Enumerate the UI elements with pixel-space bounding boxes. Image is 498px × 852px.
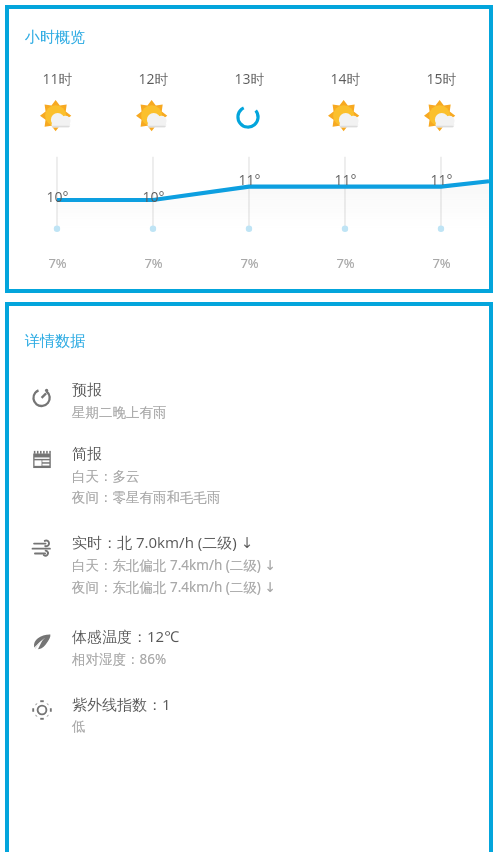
staticText: 详情数据 <box>25 332 85 351</box>
button[interactable]: Wind <box>9 532 489 596</box>
other: Summary <box>29 448 55 474</box>
staticText: 夜间：东北偏北 7.4km/h (二级) ↓ <box>72 578 276 596</box>
staticText: 紫外线指数：1 <box>72 694 171 714</box>
button[interactable]: 详情数据 <box>9 306 489 852</box>
staticText: 7% <box>240 254 259 272</box>
button[interactable]: UV index <box>9 694 489 735</box>
other: UV index <box>29 697 55 723</box>
staticText: 低 <box>72 718 86 735</box>
other: Feels like temperature <box>29 629 55 655</box>
staticText: 简报 <box>72 445 102 464</box>
staticText: 白天：东北偏北 7.4km/h (二级) ↓ <box>72 556 276 574</box>
staticText: 11° <box>334 170 357 189</box>
staticText: 小时概览 <box>25 28 85 47</box>
staticText: 11° <box>430 170 453 189</box>
staticText: 13时 <box>234 69 265 88</box>
staticText: 夜间：零星有雨和毛毛雨 <box>72 489 221 506</box>
staticText: 15时 <box>426 69 457 88</box>
other: Forecast <box>29 384 55 410</box>
staticText: 相对湿度：86% <box>72 650 167 668</box>
staticText: 10° <box>46 187 69 206</box>
staticText: 7% <box>144 254 163 272</box>
staticText: 11° <box>238 170 261 189</box>
staticText: 星期二晚上有雨 <box>72 404 167 421</box>
staticText: 预报 <box>72 381 102 400</box>
other: Wind <box>29 535 55 561</box>
button[interactable]: Feels like temperature <box>9 626 489 668</box>
staticText: 白天：多云 <box>72 468 140 485</box>
staticText: 12时 <box>138 69 169 88</box>
staticText: 11时 <box>42 69 73 88</box>
button[interactable]: Summary <box>9 445 489 506</box>
button[interactable]: Forecast <box>9 381 489 421</box>
staticText: 实时：北 7.0km/h (二级) ↓ <box>72 532 254 552</box>
button[interactable]: 小时概览 <box>9 9 489 289</box>
staticText: 7% <box>432 254 451 272</box>
staticText: 7% <box>48 254 67 272</box>
staticText: 7% <box>336 254 355 272</box>
staticText: 14时 <box>330 69 361 88</box>
staticText: 体感温度：12℃ <box>72 626 180 646</box>
staticText: 10° <box>142 187 165 206</box>
